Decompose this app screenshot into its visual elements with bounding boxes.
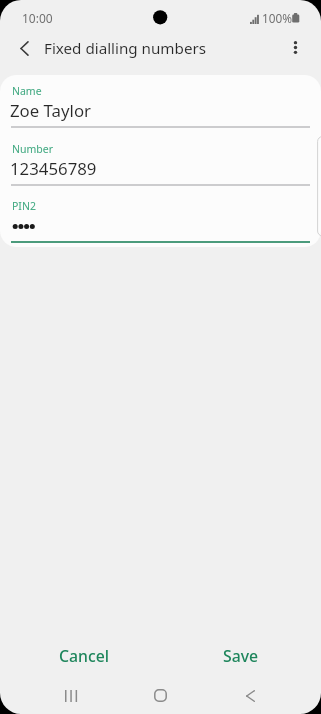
button[interactable]: Name bbox=[0, 75, 321, 133]
staticText: Zoe Taylor bbox=[10, 99, 92, 122]
staticText: Cancel bbox=[59, 645, 110, 667]
button[interactable]: Cancel bbox=[59, 645, 110, 667]
staticText: Fixed dialling numbers bbox=[44, 38, 207, 59]
button[interactable]: PIN2 bbox=[0, 190, 321, 247]
staticText: 100% bbox=[262, 10, 293, 26]
staticText: PIN2 bbox=[12, 199, 36, 213]
button[interactable]: Save bbox=[223, 645, 259, 667]
staticText: Name bbox=[12, 84, 42, 98]
staticText: 123456789 bbox=[10, 157, 97, 180]
staticText: Save bbox=[223, 645, 259, 667]
button[interactable]: Navigate up bbox=[7, 31, 42, 66]
staticText: 10:00 bbox=[22, 10, 53, 26]
button[interactable]: Number bbox=[0, 133, 321, 191]
button[interactable]: Recents bbox=[52, 677, 89, 714]
staticText: Number bbox=[12, 142, 54, 156]
button[interactable]: Back bbox=[232, 677, 269, 714]
button[interactable]: More options bbox=[278, 30, 313, 65]
button[interactable]: Home bbox=[142, 677, 179, 714]
